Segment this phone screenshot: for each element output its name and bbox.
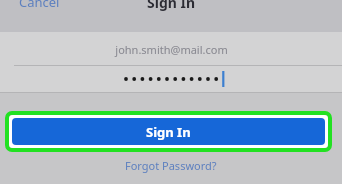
staticText: john.smith@mail.com [115, 42, 228, 57]
button[interactable]: Forgot Password? [0, 156, 342, 174]
button[interactable]: john.smith@mail.com [0, 34, 342, 65]
button[interactable] [0, 66, 342, 92]
button[interactable]: Cancel [8, 0, 70, 13]
staticText: Sign In [147, 0, 196, 12]
button[interactable]: Sign In [5, 111, 332, 152]
staticText: Cancel [19, 0, 60, 11]
staticText: Sign In [146, 123, 191, 141]
staticText: Forgot Password? [125, 158, 217, 173]
